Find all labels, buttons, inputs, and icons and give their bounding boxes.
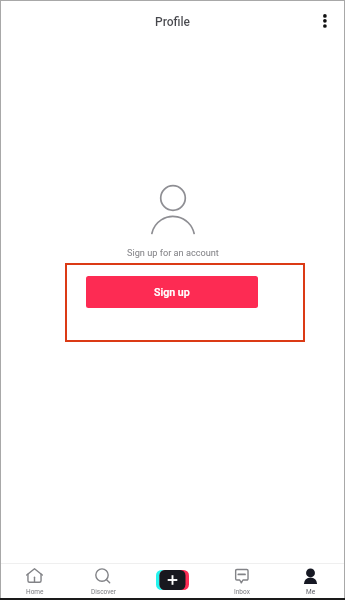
- button[interactable]: Me: [276, 563, 345, 598]
- button[interactable]: Discover: [69, 563, 138, 598]
- button[interactable]: Sign up: [86, 276, 258, 308]
- staticText: Sign up: [154, 286, 190, 299]
- button[interactable]: Inbox: [207, 563, 276, 598]
- button[interactable]: More options: [313, 9, 337, 33]
- staticText: Inbox: [234, 588, 250, 596]
- staticText: Sign up for an account: [127, 247, 219, 258]
- button[interactable]: Create: [156, 570, 189, 590]
- button[interactable]: Home: [0, 563, 69, 598]
- staticText: Discover: [91, 588, 117, 596]
- staticText: Me: [306, 588, 316, 596]
- staticText: Profile: [155, 15, 191, 29]
- staticText: Home: [26, 588, 44, 596]
